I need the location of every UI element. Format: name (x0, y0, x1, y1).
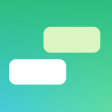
button[interactable]: Message (43, 27, 100, 53)
button[interactable]: Message (9, 59, 66, 85)
